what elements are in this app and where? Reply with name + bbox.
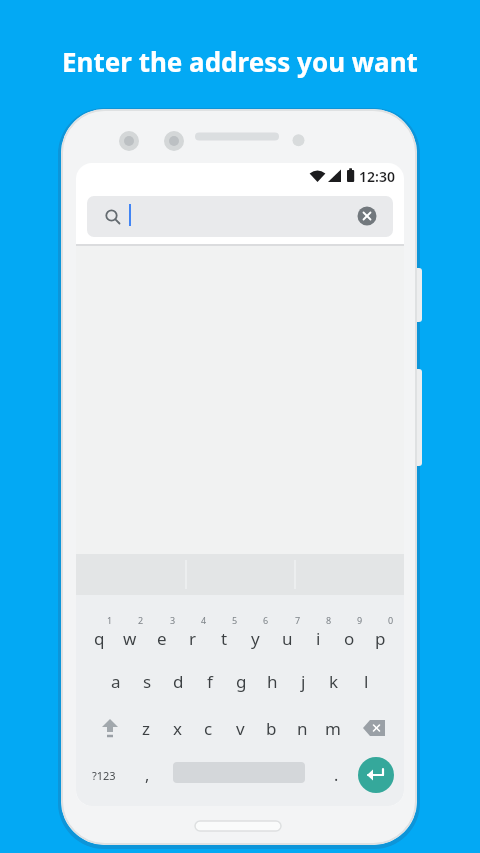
button[interactable]: c — [192, 714, 224, 742]
staticText: 5 — [232, 614, 238, 626]
staticText: g — [236, 670, 247, 693]
button[interactable]: . — [320, 761, 352, 789]
staticText: l — [364, 670, 369, 693]
staticText: r — [189, 627, 197, 650]
staticText: . — [334, 764, 339, 786]
button[interactable]: k — [318, 667, 350, 695]
staticText: 2 — [138, 614, 144, 626]
button[interactable]: f — [194, 667, 226, 695]
staticText: j — [301, 670, 306, 693]
staticText: a — [111, 670, 121, 693]
button[interactable]: , — [131, 761, 163, 789]
button[interactable]: e — [146, 624, 178, 652]
button[interactable]: 3 — [157, 606, 189, 634]
staticText: x — [173, 717, 182, 740]
button[interactable]: 5 — [219, 606, 251, 634]
button[interactable]: v — [224, 714, 256, 742]
staticText: f — [207, 670, 213, 693]
staticText: 0 — [388, 614, 394, 626]
button[interactable]: 1 — [94, 606, 126, 634]
staticText: u — [282, 627, 293, 650]
staticText: 1 — [107, 614, 113, 626]
staticText: p — [375, 627, 386, 650]
button[interactable]: y — [239, 624, 271, 652]
button[interactable]: h — [256, 667, 288, 695]
staticText: ?123 — [92, 768, 116, 783]
staticText: t — [221, 627, 228, 650]
staticText: i — [316, 627, 321, 650]
staticText: h — [267, 670, 278, 693]
staticText: y — [251, 627, 260, 650]
staticText: 12:30 — [359, 167, 395, 185]
button[interactable]: l — [350, 667, 382, 695]
button[interactable]: m — [317, 714, 349, 742]
button[interactable]: b — [255, 714, 287, 742]
button[interactable]: 6 — [250, 606, 282, 634]
staticText: q — [94, 627, 105, 650]
staticText: o — [344, 627, 355, 650]
button[interactable]: 2 — [125, 606, 157, 634]
button[interactable]: ?123 — [88, 761, 120, 789]
staticText: k — [329, 670, 339, 693]
button[interactable]: s — [131, 667, 163, 695]
staticText: n — [297, 717, 308, 740]
staticText: 3 — [170, 614, 176, 626]
staticText: z — [142, 717, 150, 740]
button[interactable]: r — [177, 624, 209, 652]
button[interactable]: g — [225, 667, 257, 695]
button[interactable]: j — [287, 667, 319, 695]
staticText: b — [266, 717, 277, 740]
button[interactable]: u — [271, 624, 303, 652]
button[interactable]: i — [302, 624, 334, 652]
button[interactable]: 0 — [375, 606, 404, 634]
button[interactable]: p — [364, 624, 396, 652]
button[interactable]: d — [162, 667, 194, 695]
staticText: 8 — [326, 614, 332, 626]
staticText: 6 — [263, 614, 269, 626]
button[interactable]: w — [114, 624, 146, 652]
staticText: d — [173, 670, 184, 693]
staticText: w — [123, 627, 137, 650]
staticText: c — [204, 717, 213, 740]
staticText: 9 — [357, 614, 363, 626]
staticText: 4 — [201, 614, 207, 626]
staticText: s — [143, 670, 152, 693]
staticText: 7 — [295, 614, 301, 626]
button[interactable]: 8 — [313, 606, 345, 634]
button[interactable] — [87, 196, 393, 237]
button[interactable]: 7 — [282, 606, 314, 634]
button[interactable] — [362, 717, 388, 739]
staticText: v — [236, 717, 245, 740]
staticText: , — [145, 764, 150, 786]
staticText: e — [157, 627, 167, 650]
button[interactable]: 9 — [344, 606, 376, 634]
staticText: m — [325, 717, 341, 740]
button[interactable] — [98, 716, 122, 740]
button[interactable]: t — [208, 624, 240, 652]
button[interactable] — [358, 757, 394, 793]
button[interactable]: o — [333, 624, 365, 652]
button[interactable]: a — [100, 667, 132, 695]
button[interactable] — [357, 206, 377, 226]
button[interactable]: z — [130, 714, 162, 742]
button[interactable]: n — [286, 714, 318, 742]
button[interactable]: x — [161, 714, 193, 742]
button[interactable]: q — [83, 624, 115, 652]
button[interactable]: 4 — [188, 606, 220, 634]
staticText: Enter the address you want — [62, 44, 418, 79]
